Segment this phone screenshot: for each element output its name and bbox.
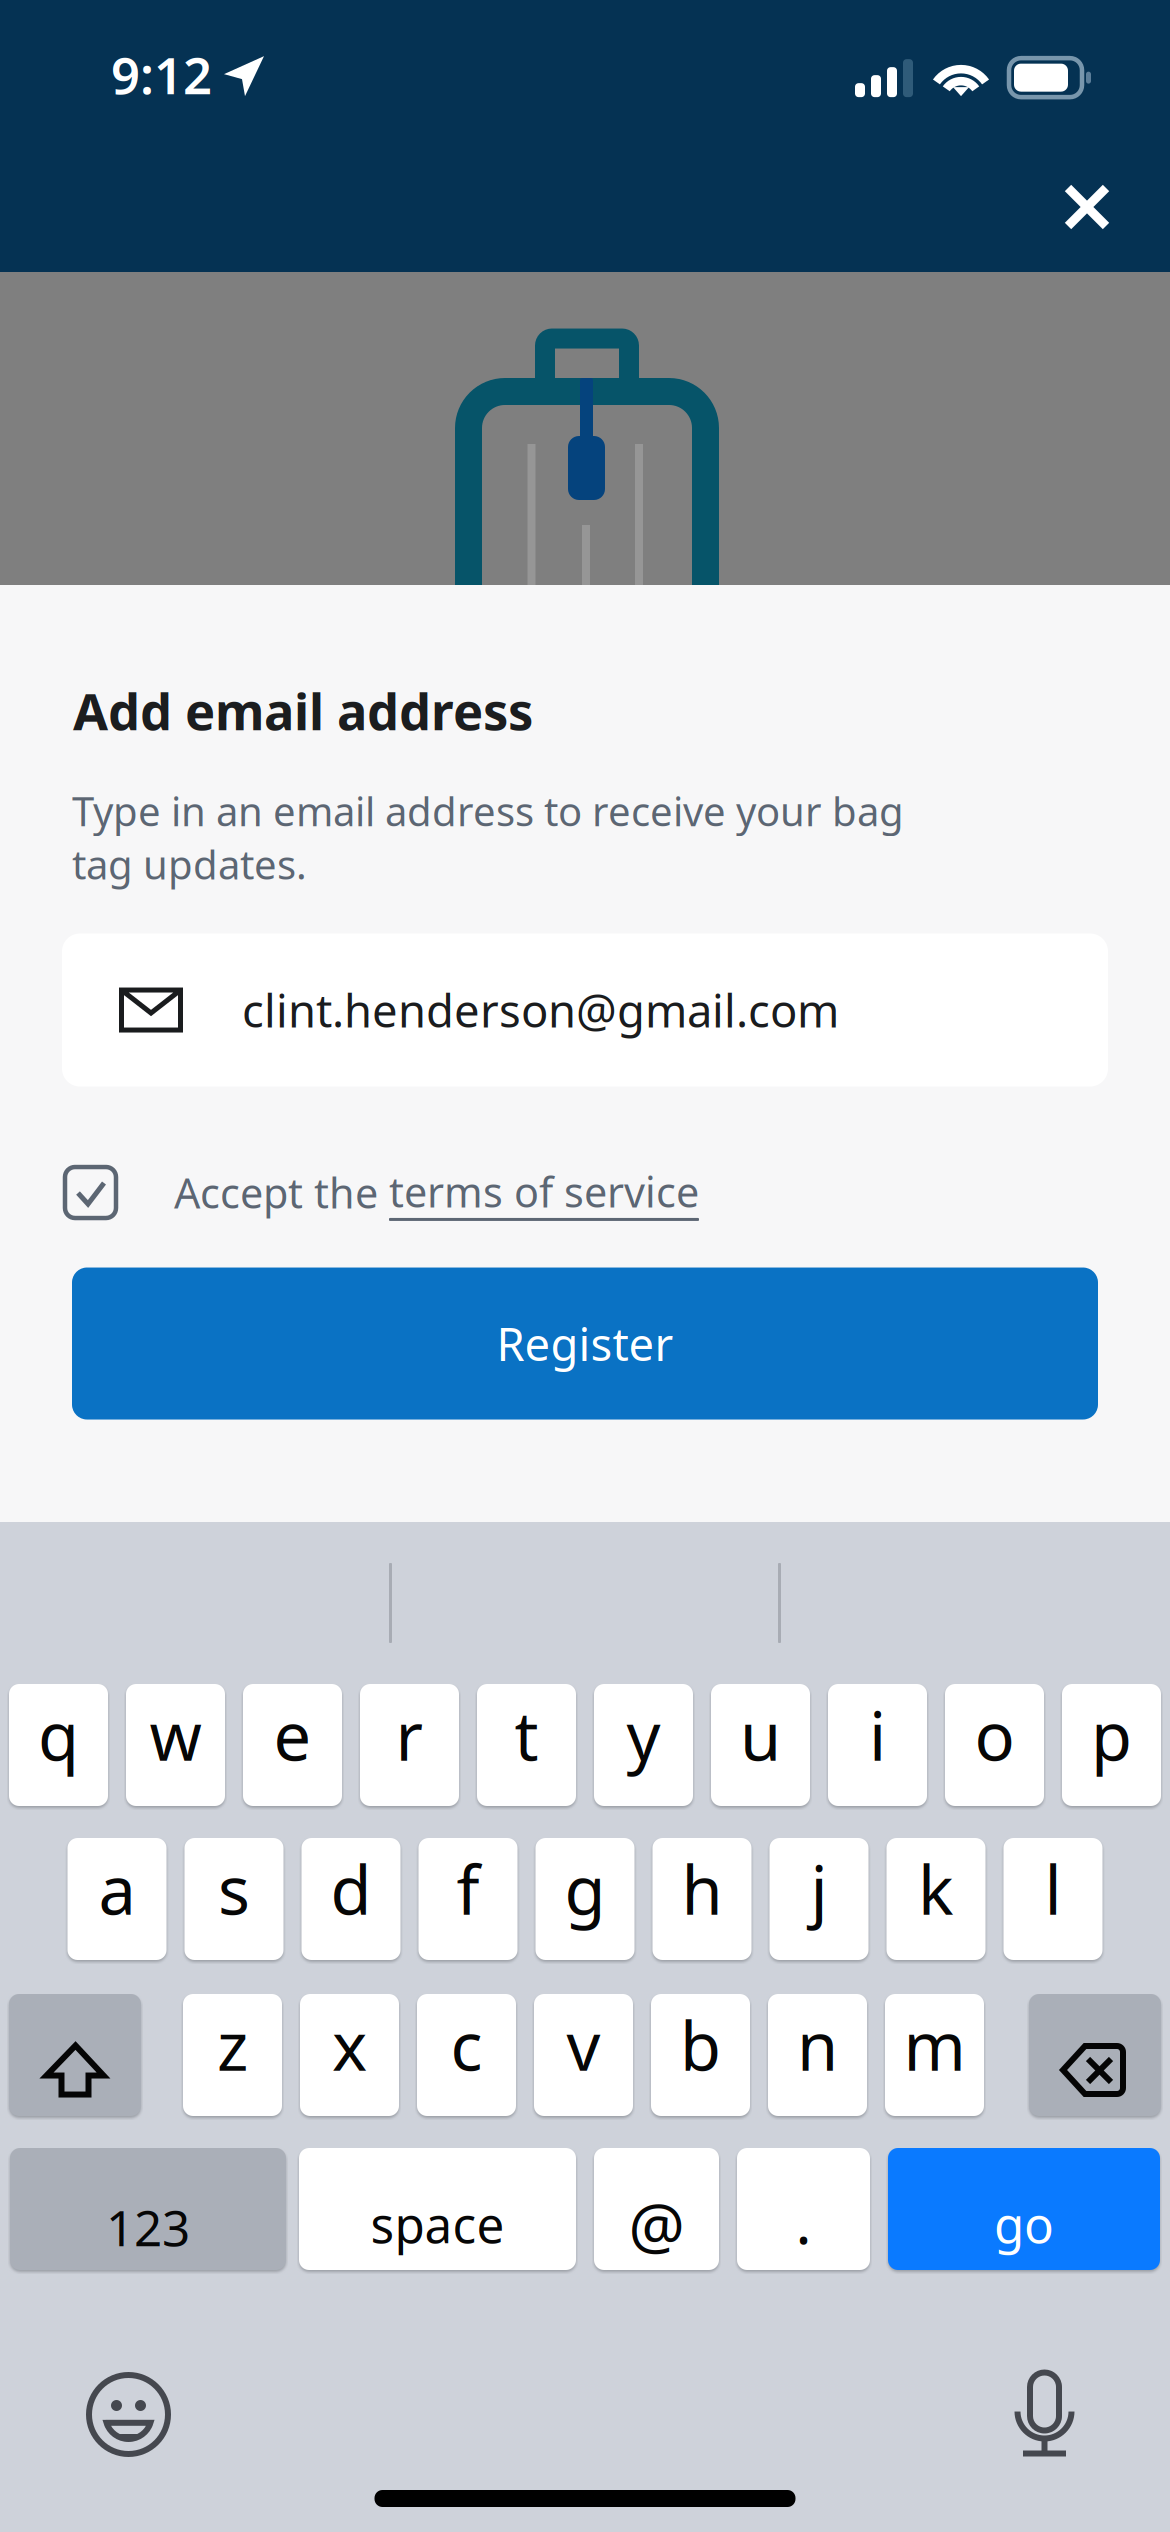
button[interactable]: go <box>888 2148 1160 2270</box>
staticText: s <box>218 1845 250 1933</box>
staticText: go <box>994 2191 1054 2257</box>
staticText: k <box>918 1845 954 1933</box>
button[interactable]: v <box>534 1994 633 2116</box>
button[interactable]: space <box>299 2148 576 2270</box>
staticText: terms of service <box>389 1164 699 1219</box>
button[interactable]: u <box>711 1684 810 1806</box>
button[interactable]: n <box>768 1994 867 2116</box>
staticText: h <box>681 1845 722 1933</box>
staticText: y <box>626 1691 660 1779</box>
button[interactable]: i <box>828 1684 927 1806</box>
staticText: f <box>456 1845 479 1933</box>
staticText: u <box>740 1691 781 1779</box>
button[interactable]: Dictate <box>1009 2364 1080 2464</box>
button[interactable]: x <box>300 1994 399 2116</box>
button[interactable]: m <box>885 1994 984 2116</box>
staticText: q <box>38 1691 79 1779</box>
button[interactable]: b <box>651 1994 750 2116</box>
button[interactable]: Close <box>1047 167 1127 247</box>
staticText: r <box>395 1691 423 1779</box>
staticText: space <box>370 2191 504 2257</box>
button[interactable]: f <box>418 1838 517 1960</box>
button[interactable]: r <box>360 1684 459 1806</box>
staticText: x <box>332 2001 367 2089</box>
staticText: l <box>1044 1845 1061 1933</box>
staticText: t <box>514 1691 538 1779</box>
staticText: b <box>680 2001 721 2089</box>
button[interactable]: w <box>126 1684 225 1806</box>
staticText: a <box>98 1845 135 1933</box>
button[interactable]: . <box>737 2148 870 2270</box>
staticText: g <box>564 1845 605 1933</box>
staticText: @ <box>628 2182 684 2266</box>
button[interactable]: y <box>594 1684 693 1806</box>
button[interactable]: z <box>183 1994 282 2116</box>
button[interactable]: h <box>652 1838 751 1960</box>
button[interactable]: s <box>184 1838 283 1960</box>
staticText: v <box>566 2001 600 2089</box>
button[interactable]: p <box>1062 1684 1161 1806</box>
staticText: w <box>149 1691 201 1779</box>
button[interactable]: a <box>67 1838 166 1960</box>
button[interactable]: k <box>886 1838 985 1960</box>
button[interactable]: l <box>1003 1838 1102 1960</box>
button[interactable]: e <box>243 1684 342 1806</box>
staticText: p <box>1091 1691 1132 1779</box>
button[interactable]: @ <box>594 2148 719 2270</box>
staticText: c <box>450 2001 482 2089</box>
staticText: i <box>869 1691 886 1779</box>
staticText: e <box>273 1691 311 1779</box>
button[interactable]: Emoji keyboard <box>81 2367 176 2462</box>
staticText: Register <box>496 1313 673 1374</box>
staticText: Add email address <box>73 677 533 744</box>
button[interactable]: Shift <box>9 1994 141 2116</box>
button[interactable]: o <box>945 1684 1044 1806</box>
button[interactable]: g <box>535 1838 634 1960</box>
button[interactable]: Register <box>72 1267 1098 1419</box>
button[interactable]: q <box>9 1684 108 1806</box>
staticText: z <box>217 2001 248 2089</box>
staticText: m <box>903 2001 965 2089</box>
button[interactable]: j <box>769 1838 868 1960</box>
staticText: Type in an email address to receive your… <box>72 784 904 890</box>
staticText: Accept the <box>174 1165 389 1220</box>
staticText: d <box>330 1845 371 1933</box>
button[interactable]: d <box>301 1838 400 1960</box>
staticText: clint.henderson@gmail.com <box>242 980 839 1040</box>
staticText: n <box>797 2001 838 2089</box>
button[interactable]: 123 <box>10 2148 286 2270</box>
staticText: j <box>810 1845 827 1933</box>
staticText: . <box>795 2181 811 2261</box>
button[interactable]: c <box>417 1994 516 2116</box>
button[interactable]: t <box>477 1684 576 1806</box>
staticText: 9:12 <box>111 41 212 108</box>
staticText: 123 <box>106 2194 190 2260</box>
staticText: o <box>974 1691 1014 1779</box>
button[interactable]: Delete <box>1029 1994 1161 2116</box>
button[interactable]: Accept the <box>62 1152 1108 1232</box>
